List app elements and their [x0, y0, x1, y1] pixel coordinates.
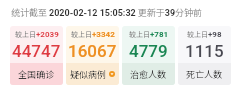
staticText: 44747: [12, 41, 61, 61]
button[interactable]: 较上日+781: [122, 26, 175, 85]
staticText: 较上日+781: [129, 29, 169, 39]
staticText: 疑似病例: [70, 68, 107, 81]
staticText: 较上日+2039: [15, 29, 59, 39]
staticText: 1115: [185, 41, 224, 61]
staticText: 16067: [68, 41, 117, 61]
staticText: 死亡人数: [186, 68, 223, 81]
staticText: 统计截至 2020-02-12 15:05:32 更新于39分钟前: [11, 6, 203, 19]
button[interactable]: 较上日+98: [178, 26, 231, 85]
staticText: 治愈人数: [130, 68, 167, 81]
staticText: 较上日+98: [187, 29, 222, 39]
staticText: 4779: [129, 41, 168, 61]
staticText: 全国确诊: [18, 68, 55, 81]
button[interactable]: 较上日+2039: [10, 26, 63, 85]
button[interactable]: 较上日+3342: [66, 26, 119, 85]
staticText: 较上日+3342: [71, 29, 115, 39]
